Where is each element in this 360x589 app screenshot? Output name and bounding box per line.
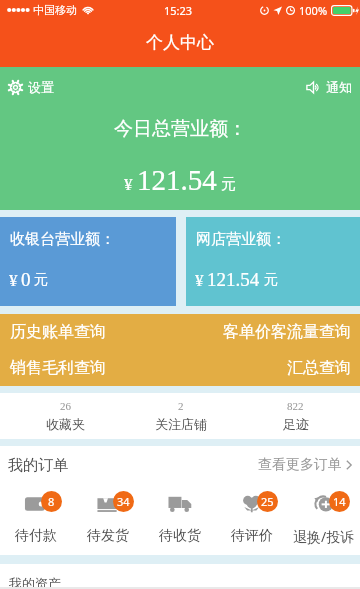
staticText: 121.54: [207, 269, 260, 290]
staticText: 收藏夹: [46, 416, 85, 432]
staticText: ¥: [195, 271, 204, 290]
staticText: 历史账单查询: [10, 322, 106, 342]
staticText: 销售毛利查询: [10, 358, 106, 378]
button[interactable]: 待收货: [144, 484, 216, 555]
button[interactable]: 客单价客流量查询: [180, 314, 360, 350]
staticText: 足迹: [283, 416, 309, 432]
button[interactable]: 收银台营业额：: [0, 217, 176, 306]
button[interactable]: 25: [216, 484, 288, 555]
staticText: 通知: [326, 79, 352, 95]
staticText: 查看更多订单: [258, 456, 342, 474]
staticText: 收银台营业额：: [10, 230, 115, 249]
button[interactable]: 26: [7, 393, 123, 439]
staticText: ¥: [124, 175, 133, 194]
staticText: 个人中心: [146, 32, 214, 53]
staticText: 121.54: [137, 164, 217, 196]
staticText: 待收货: [159, 527, 201, 545]
staticText: 元: [34, 271, 48, 289]
staticText: 我的订单: [8, 456, 68, 475]
staticText: 2: [178, 400, 184, 412]
staticText: 关注店铺: [155, 416, 207, 432]
staticText: 待发货: [87, 527, 129, 545]
button[interactable]: 34: [72, 484, 144, 555]
button[interactable]: 汇总查询: [180, 350, 360, 386]
staticText: 设置: [28, 79, 54, 95]
staticText: 100%: [299, 3, 328, 18]
staticText: 中国移动: [33, 3, 77, 17]
staticText: 退换/投诉: [293, 527, 355, 546]
staticText: 我的资产: [9, 575, 61, 589]
staticText: 元: [264, 271, 278, 289]
staticText: 0: [21, 269, 31, 290]
button[interactable]: 14: [288, 484, 360, 555]
staticText: 待评价: [231, 527, 273, 545]
staticText: 8: [48, 494, 55, 509]
staticText: 14: [333, 494, 346, 509]
staticText: 34: [117, 494, 130, 509]
staticText: 待付款: [15, 527, 57, 545]
staticText: 元: [221, 175, 236, 194]
button[interactable]: 822: [238, 393, 353, 439]
button[interactable]: 2: [123, 393, 238, 439]
staticText: 网店营业额：: [196, 230, 286, 249]
button[interactable]: 销售毛利查询: [0, 350, 180, 386]
button[interactable]: 历史账单查询: [0, 314, 180, 350]
staticText: 今日总营业额：: [114, 117, 247, 141]
staticText: 25: [261, 494, 274, 509]
staticText: 汇总查询: [287, 358, 351, 378]
staticText: ¥: [9, 271, 18, 290]
button[interactable]: 查看更多订单: [250, 450, 360, 480]
button[interactable]: 8: [0, 484, 72, 555]
staticText: 客单价客流量查询: [223, 322, 351, 342]
staticText: 822: [287, 400, 304, 412]
button[interactable]: 通知: [298, 75, 360, 99]
button[interactable]: 设置: [0, 75, 62, 99]
button[interactable]: 网店营业额：: [186, 217, 360, 306]
staticText: 26: [60, 400, 71, 412]
staticText: 15:23: [164, 3, 193, 18]
